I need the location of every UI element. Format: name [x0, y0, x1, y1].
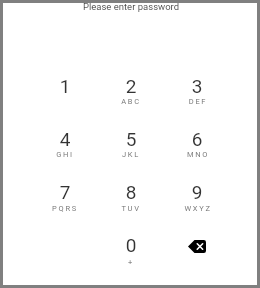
staticText: 3	[157, 75, 237, 97]
button[interactable]	[32, 176, 98, 229]
button[interactable]	[98, 123, 164, 176]
staticText: GHI	[25, 150, 105, 159]
button[interactable]	[98, 70, 164, 123]
staticText: 1	[25, 75, 105, 97]
button[interactable]	[164, 70, 230, 123]
button[interactable]	[32, 70, 98, 123]
staticText: WXYZ	[158, 204, 238, 213]
staticText: JKL	[91, 150, 171, 159]
staticText: 2	[91, 75, 171, 97]
staticText: TUV	[91, 204, 171, 213]
staticText: 0	[91, 234, 171, 256]
button[interactable]: Backspace	[164, 229, 230, 282]
staticText: PQRS	[25, 204, 105, 213]
staticText: Please enter password	[1, 1, 260, 12]
button[interactable]	[32, 123, 98, 176]
staticText: ABC	[91, 97, 171, 106]
staticText: MNO	[158, 150, 238, 159]
button[interactable]	[164, 176, 230, 229]
staticText: 5	[91, 128, 171, 150]
staticText: DEF	[158, 97, 238, 106]
button[interactable]	[98, 176, 164, 229]
button[interactable]	[98, 229, 164, 282]
staticText: +	[91, 258, 171, 267]
staticText: 4	[25, 128, 105, 150]
staticText: 6	[157, 128, 237, 150]
staticText: 7	[25, 181, 105, 203]
button[interactable]	[164, 123, 230, 176]
staticText: 8	[91, 181, 171, 203]
staticText: 9	[157, 181, 237, 203]
